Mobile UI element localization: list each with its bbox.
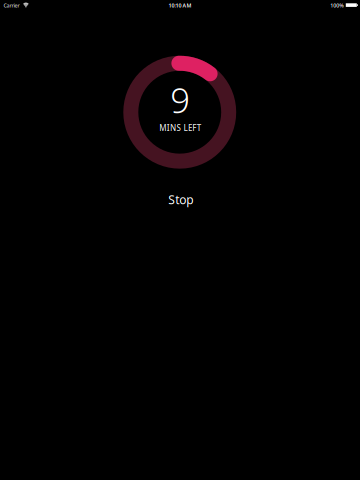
button[interactable]: Stop — [136, 188, 226, 210]
staticText: MINS LEFT — [159, 122, 201, 133]
staticText: 10:10 AM — [168, 2, 191, 9]
staticText: 9 — [170, 77, 190, 123]
staticText: Stop — [168, 191, 193, 207]
staticText: Carrier — [3, 2, 19, 9]
staticText: 100% — [330, 2, 344, 9]
